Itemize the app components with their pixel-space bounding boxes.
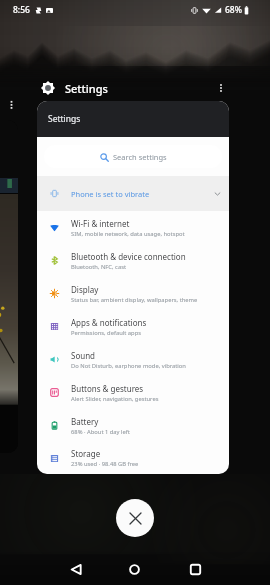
staticText: Bluetooth, NFC, cast [71, 263, 127, 271]
button[interactable]: Storage [37, 442, 229, 474]
button[interactable]: Back [62, 555, 90, 583]
staticText: Bluetooth & device connection [71, 251, 186, 262]
staticText: Apps & notifications [71, 317, 147, 328]
button[interactable]: Phone is set to vibrate [37, 176, 229, 211]
staticText: Buttons & gestures [71, 383, 144, 394]
button[interactable]: More options [5, 98, 17, 110]
staticText: 68% [225, 4, 242, 16]
staticText: Do Not Disturb, earphone mode, vibration [71, 362, 186, 370]
staticText: Storage [71, 448, 101, 459]
staticText: Search settings [113, 152, 167, 162]
button[interactable]: Recents [181, 555, 209, 583]
staticText: Sound [71, 350, 96, 361]
staticText: Display [71, 284, 99, 295]
button[interactable]: Search settings [44, 145, 222, 168]
button[interactable]: More options [210, 77, 232, 99]
staticText: Permissions, default apps [71, 329, 141, 337]
staticText: Wi-Fi & internet [71, 218, 130, 229]
button[interactable]: Display [37, 277, 229, 310]
button[interactable]: Battery [37, 409, 229, 442]
staticText: Settings [48, 113, 81, 125]
button[interactable]: Bluetooth & device connection [37, 244, 229, 277]
staticText: Settings [65, 81, 108, 96]
staticText: SIM, mobile network, data usage, hotspot [71, 230, 185, 238]
button[interactable]: Home [120, 555, 148, 583]
staticText: Battery [71, 416, 99, 427]
button[interactable]: Clear all [116, 499, 154, 537]
button[interactable]: Wi-Fi & internet [37, 211, 229, 244]
button[interactable]: Sound [37, 343, 229, 376]
button[interactable]: Buttons & gestures [37, 376, 229, 409]
staticText: Phone is set to vibrate [71, 189, 150, 199]
staticText: 68% · About 1 day left [71, 428, 130, 436]
staticText: 23% used · 98.48 GB free [71, 460, 139, 468]
button[interactable]: Apps & notifications [37, 310, 229, 343]
staticText: Alert Slider, navigation, gestures [71, 395, 159, 403]
staticText: Status bar, ambient display, wallpapers,… [71, 296, 198, 304]
staticText: 8:56 [13, 4, 30, 16]
